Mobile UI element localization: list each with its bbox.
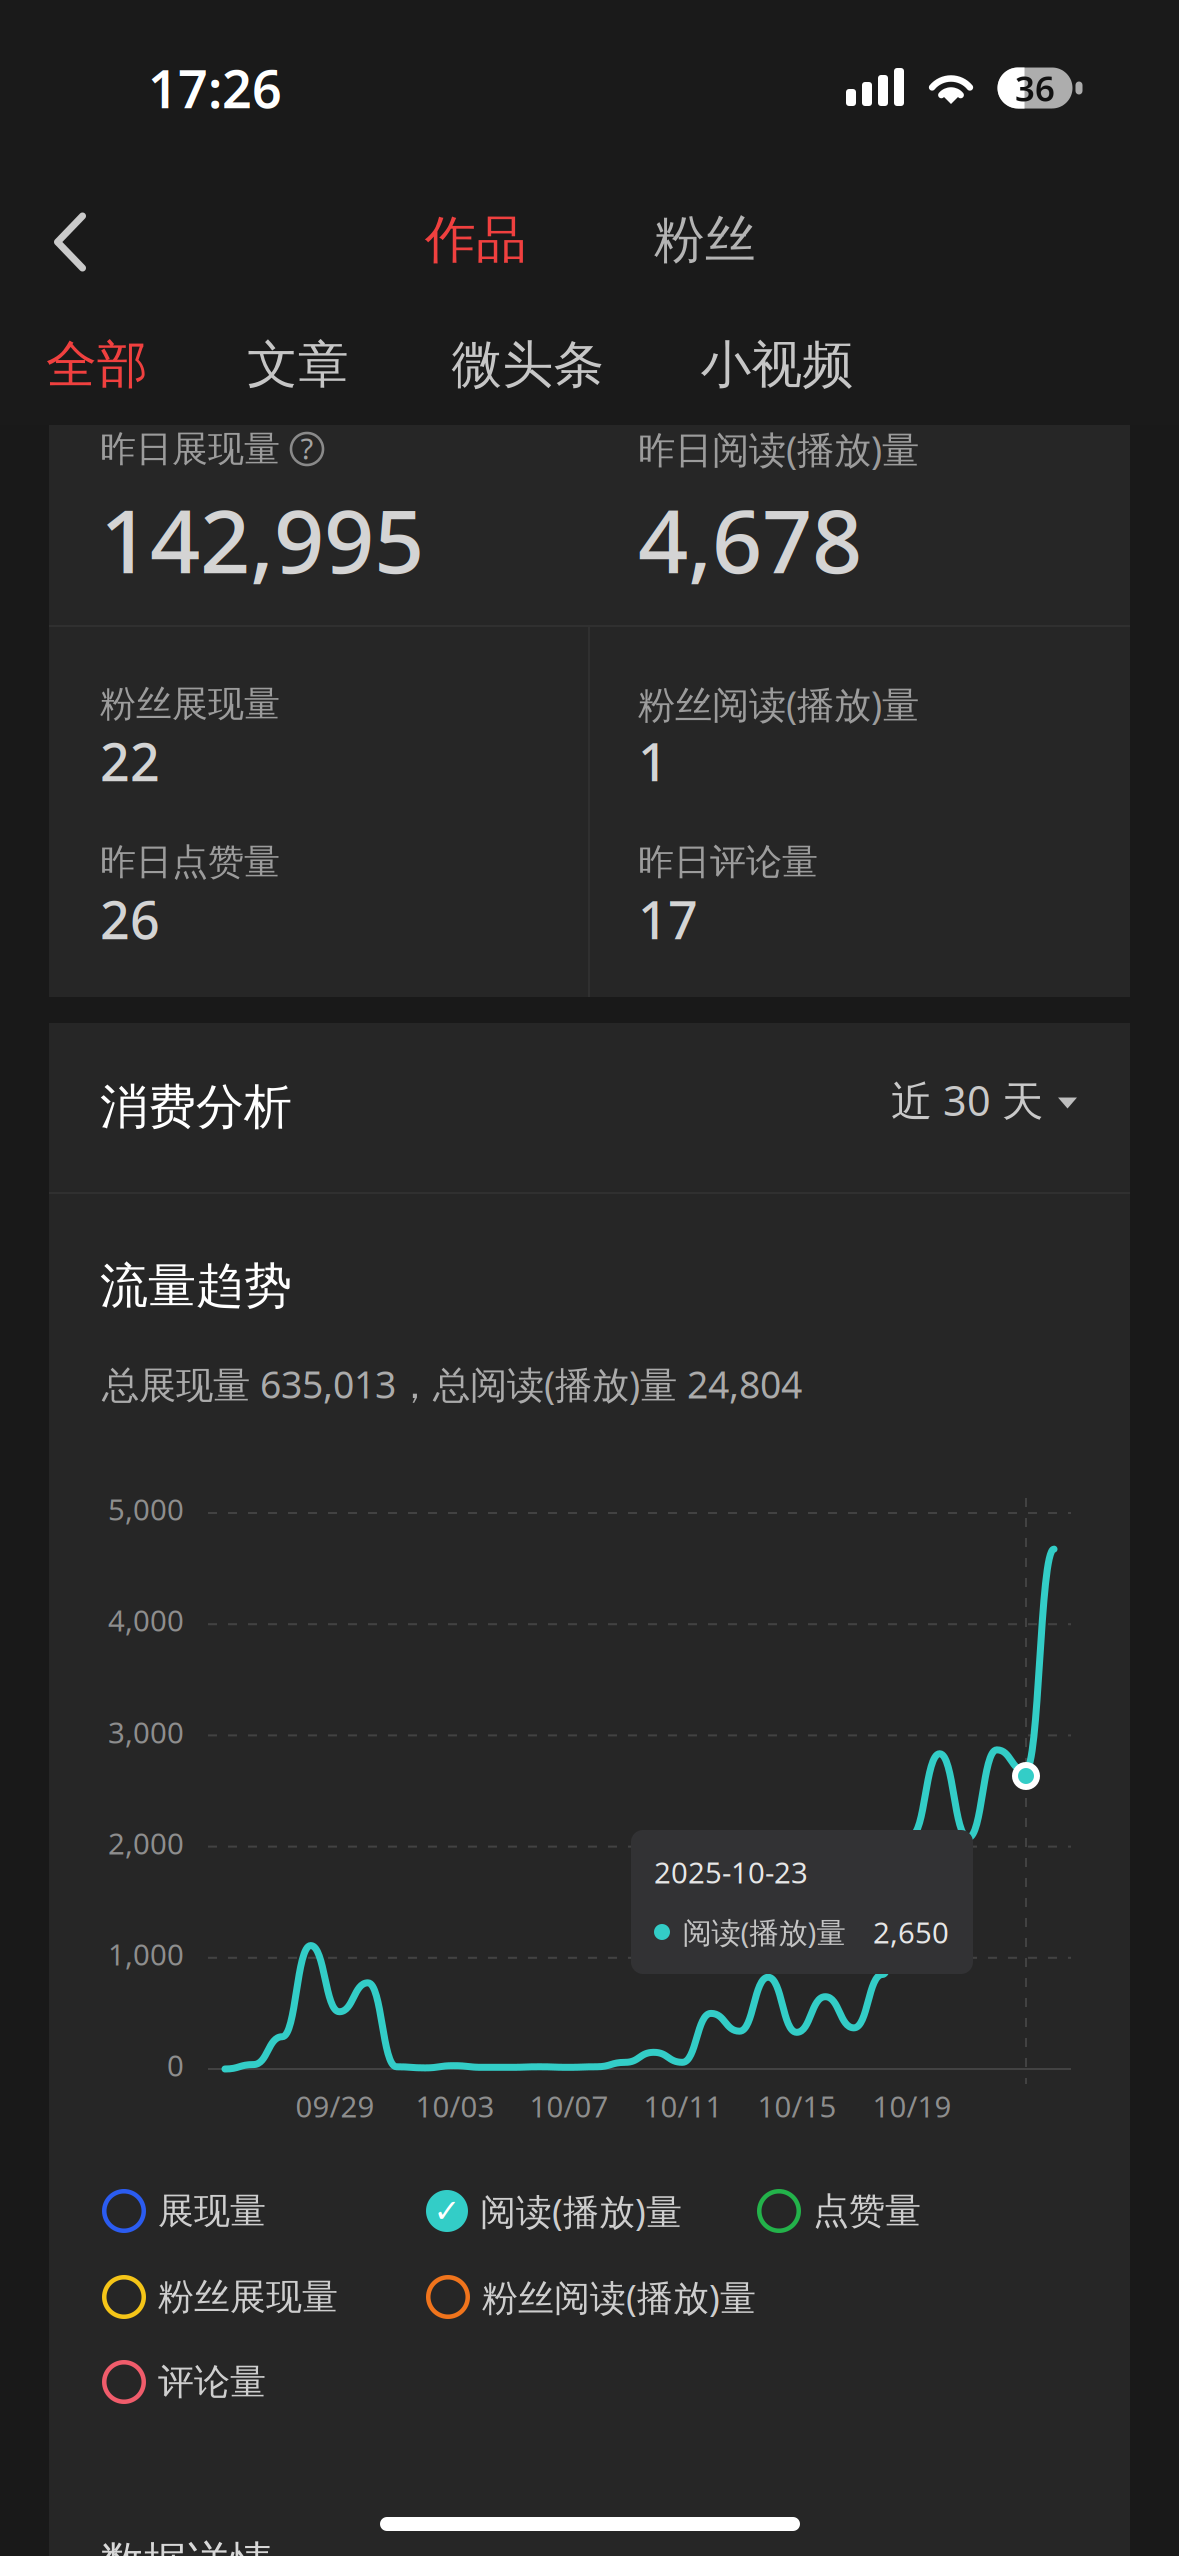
button[interactable]: 小视频 bbox=[682, 322, 872, 408]
staticText: 2025-10-23 bbox=[654, 1852, 808, 1891]
staticText: 消费分析 bbox=[100, 1077, 292, 1136]
button[interactable]: ✓ bbox=[426, 2183, 846, 2239]
staticText: 阅读(播放)量 bbox=[682, 1912, 845, 1951]
staticText: 4,678 bbox=[638, 481, 862, 597]
staticText: 10/07 bbox=[529, 2086, 608, 2125]
staticText: 近 30 天 bbox=[891, 1073, 1043, 1127]
staticText: 0 bbox=[167, 2045, 184, 2084]
staticText: 3,000 bbox=[108, 1712, 184, 1751]
button[interactable]: 文章 bbox=[228, 322, 368, 408]
button[interactable]: 全部 bbox=[27, 322, 167, 408]
staticText: 09/29 bbox=[295, 2086, 374, 2125]
staticText: 文章 bbox=[247, 334, 349, 396]
button[interactable]: 点赞量 bbox=[757, 2183, 1177, 2239]
button[interactable]: 粉丝阅读(播放)量 bbox=[426, 2269, 846, 2325]
staticText: 粉丝展现量 bbox=[158, 2275, 338, 2319]
staticText: 22 bbox=[100, 726, 160, 796]
staticText: 粉丝阅读(播放)量 bbox=[638, 679, 919, 729]
staticText: 评论量 bbox=[158, 2360, 266, 2404]
button[interactable]: 近 30 天 bbox=[677, 1058, 1077, 1142]
staticText: 数据详情 bbox=[101, 2536, 273, 2556]
staticText: 作品 bbox=[425, 209, 527, 271]
staticText: 粉丝 bbox=[654, 209, 756, 271]
button[interactable]: 评论量 bbox=[102, 2354, 522, 2410]
staticText: 26 bbox=[100, 884, 160, 954]
staticText: 2,650 bbox=[873, 1912, 949, 1951]
button[interactable]: 作品 bbox=[401, 196, 551, 284]
staticText: 微头条 bbox=[451, 334, 604, 396]
staticText: 10/15 bbox=[757, 2086, 836, 2125]
staticText: 流量趋势 bbox=[100, 1256, 292, 1315]
staticText: 17 bbox=[638, 884, 698, 954]
staticText: 昨日展现量 bbox=[100, 427, 280, 471]
button[interactable]: 微头条 bbox=[433, 322, 623, 408]
staticText: 昨日点赞量 bbox=[100, 840, 280, 884]
staticText: 10/03 bbox=[415, 2086, 494, 2125]
staticText: 总展现量 635,013，总阅读(播放)量 24,804 bbox=[102, 1359, 802, 1409]
staticText: 1,000 bbox=[108, 1934, 184, 1973]
staticText: 阅读(播放)量 bbox=[480, 2187, 682, 2235]
staticText: ? bbox=[300, 428, 313, 467]
staticText: 142,995 bbox=[100, 481, 424, 597]
staticText: 17:26 bbox=[148, 53, 282, 123]
button[interactable]: 粉丝展现量 bbox=[102, 2269, 522, 2325]
staticText: 昨日阅读(播放)量 bbox=[638, 424, 919, 474]
staticText: 粉丝展现量 bbox=[100, 682, 280, 726]
staticText: 10/19 bbox=[872, 2086, 951, 2125]
staticText: 展现量 bbox=[158, 2189, 266, 2233]
staticText: 小视频 bbox=[700, 334, 853, 396]
button[interactable]: 粉丝 bbox=[630, 196, 780, 284]
button[interactable]: 展现量 bbox=[102, 2183, 522, 2239]
staticText: 2,000 bbox=[108, 1823, 184, 1862]
button[interactable]: 返回 bbox=[10, 182, 130, 302]
staticText: 36 bbox=[1015, 65, 1055, 111]
staticText: ✓ bbox=[433, 2193, 460, 2229]
staticText: 1 bbox=[638, 726, 668, 796]
staticText: 点赞量 bbox=[813, 2189, 921, 2233]
staticText: 10/11 bbox=[643, 2086, 722, 2125]
staticText: 全部 bbox=[46, 334, 148, 396]
staticText: 粉丝阅读(播放)量 bbox=[482, 2273, 756, 2321]
staticText: 5,000 bbox=[108, 1489, 184, 1528]
staticText: 昨日评论量 bbox=[638, 840, 818, 884]
staticText: 4,000 bbox=[108, 1600, 184, 1639]
